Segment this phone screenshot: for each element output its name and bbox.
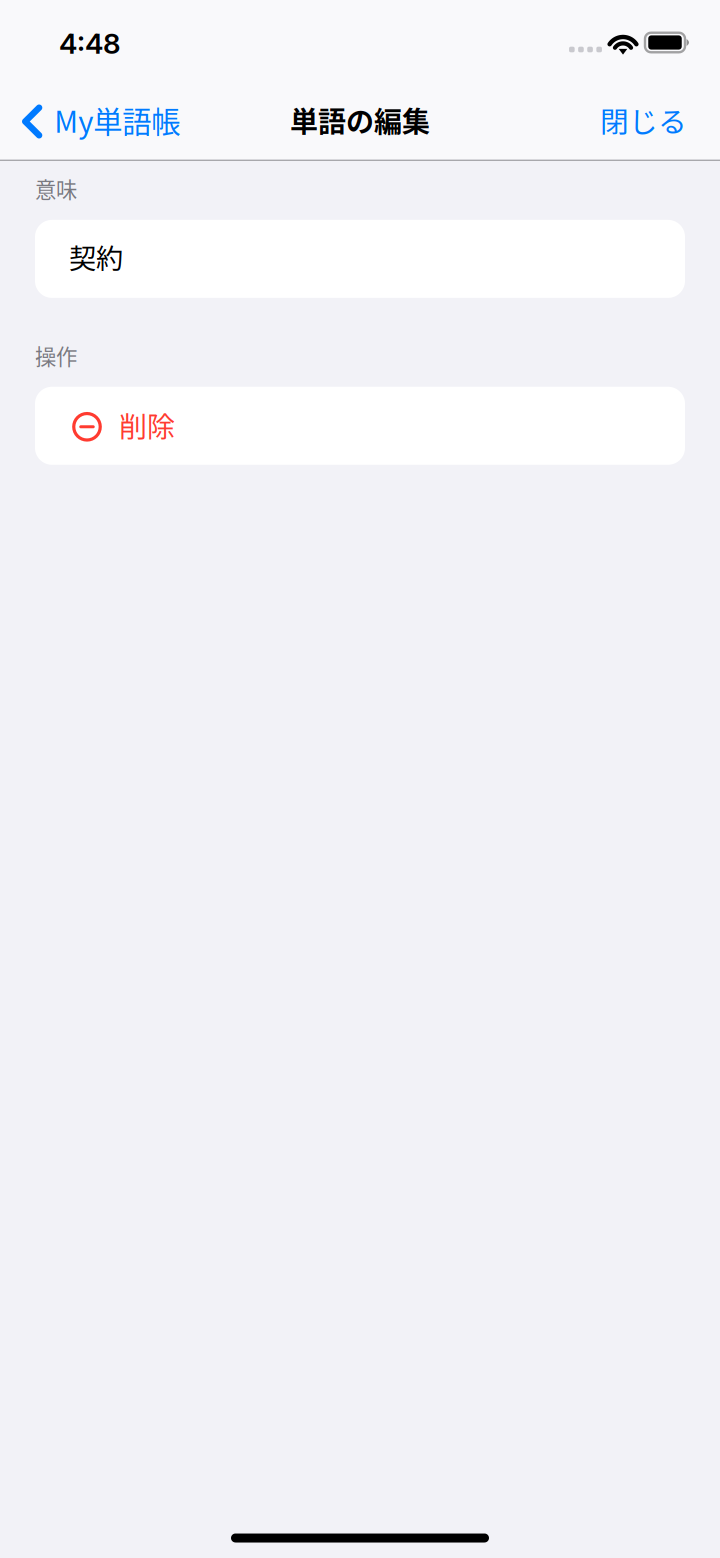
staticText: 削除 xyxy=(119,405,175,445)
staticText: My単語帳 xyxy=(54,99,180,141)
staticText: 閉じる xyxy=(600,99,687,141)
staticText: 4:48 xyxy=(59,27,121,60)
button[interactable]: 削除 xyxy=(0,387,720,465)
button[interactable]: 閉じる xyxy=(586,93,720,155)
staticText: 意味 xyxy=(35,173,77,204)
button[interactable]: My単語帳 xyxy=(0,93,194,155)
staticText: 操作 xyxy=(35,340,77,371)
button[interactable]: 契約 xyxy=(0,220,720,298)
staticText: 契約 xyxy=(69,237,123,277)
staticText: 単語の編集 xyxy=(290,100,430,140)
